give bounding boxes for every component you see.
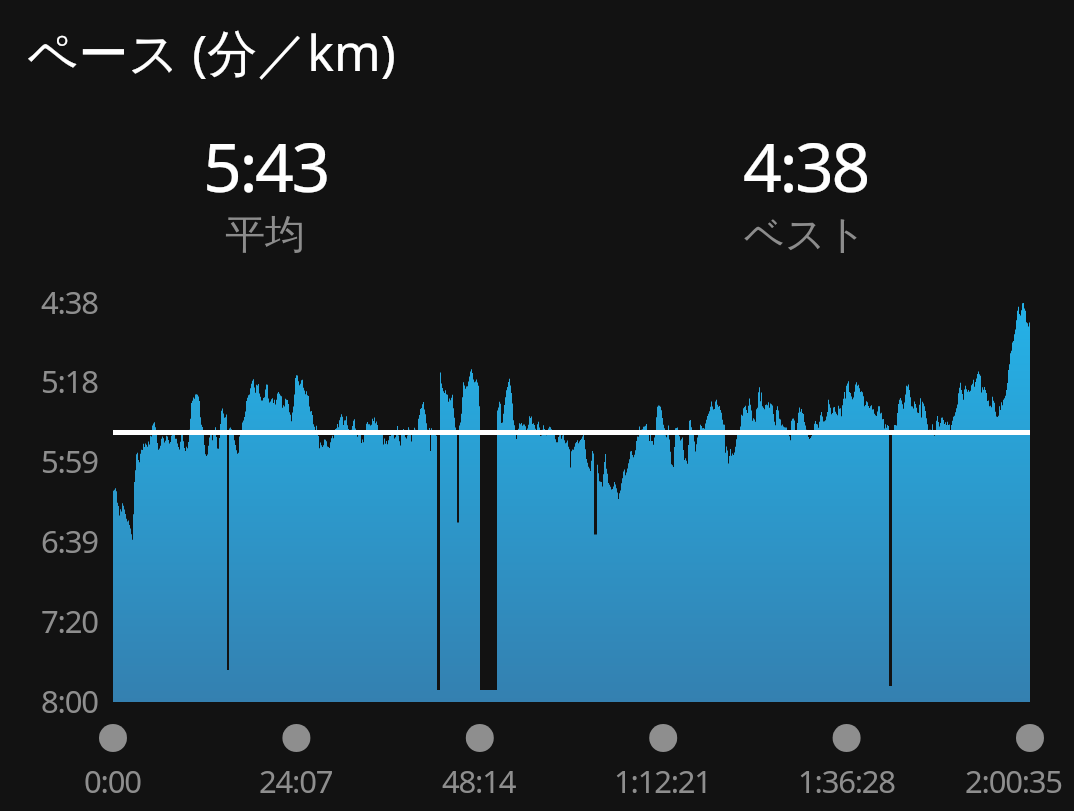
staticText: 5:18 bbox=[41, 360, 98, 402]
staticText: 平均 bbox=[225, 209, 305, 259]
staticText: 0:00 bbox=[84, 760, 141, 802]
button[interactable]: Pace graph bbox=[113, 303, 1030, 702]
staticText: 4:38 bbox=[743, 119, 868, 212]
staticText: ベスト bbox=[744, 209, 867, 259]
button[interactable]: 5:43 bbox=[0, 119, 537, 269]
button[interactable]: 4:38 bbox=[533, 119, 1074, 269]
button[interactable]: Split marker 2:00:35 bbox=[1006, 714, 1054, 762]
button[interactable]: Split marker 1:12:21 bbox=[639, 714, 687, 762]
staticText: 4:38 bbox=[41, 281, 98, 323]
staticText: 7:20 bbox=[41, 600, 98, 642]
staticText: 5:59 bbox=[41, 440, 98, 482]
button[interactable]: Split marker 24:07 bbox=[272, 714, 320, 762]
staticText: 6:39 bbox=[41, 520, 98, 562]
button[interactable]: Split marker 1:36:28 bbox=[822, 714, 870, 762]
staticText: 2:00:35 bbox=[965, 760, 1062, 802]
button[interactable]: Split marker 0:00 bbox=[89, 714, 137, 762]
staticText: 1:12:21 bbox=[614, 760, 711, 802]
staticText: 24:07 bbox=[259, 760, 333, 802]
staticText: 5:43 bbox=[203, 119, 328, 212]
staticText: ペース (分／km) bbox=[27, 18, 396, 86]
button[interactable]: Split marker 48:14 bbox=[455, 714, 503, 762]
staticText: 8:00 bbox=[41, 680, 98, 722]
staticText: 1:36:28 bbox=[798, 760, 895, 802]
staticText: 48:14 bbox=[442, 760, 516, 802]
